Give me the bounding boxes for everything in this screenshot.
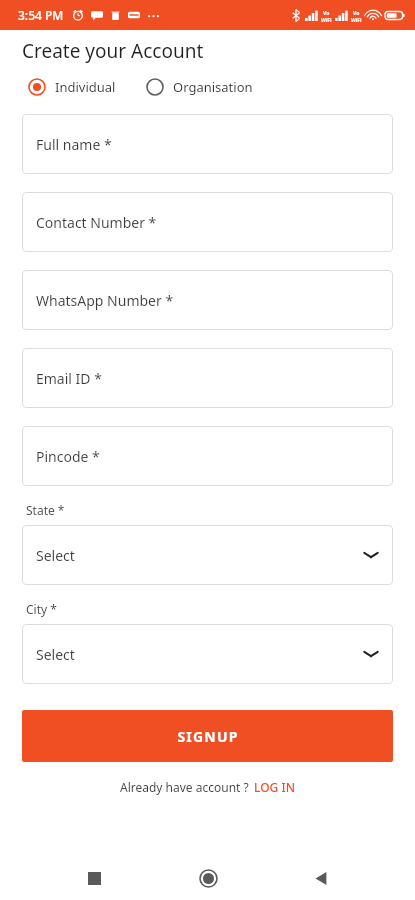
staticText: Full name * xyxy=(36,135,112,154)
staticText: City * xyxy=(26,601,57,617)
button[interactable]: Organisation xyxy=(146,78,253,96)
staticText: Create your Account xyxy=(22,38,204,64)
button[interactable]: Email ID * xyxy=(22,348,393,408)
button[interactable]: Pincode * xyxy=(22,426,393,486)
staticText: 3:54 PM xyxy=(18,7,64,23)
button[interactable]: WhatsApp Number * xyxy=(22,270,393,330)
button[interactable]: Individual xyxy=(28,78,116,96)
button[interactable]: Back xyxy=(301,858,341,898)
staticText: Organisation xyxy=(173,78,253,96)
staticText: WiFi xyxy=(351,17,362,22)
staticText: Vo xyxy=(353,10,360,17)
staticText: LOG IN xyxy=(254,779,295,795)
button[interactable]: Recents xyxy=(74,858,114,898)
staticText: WiFi xyxy=(321,17,332,22)
button[interactable]: Home xyxy=(188,858,228,898)
button[interactable]: Select state xyxy=(22,525,393,585)
button[interactable]: Contact Number * xyxy=(22,192,393,252)
button[interactable]: LOG IN xyxy=(254,779,295,795)
button[interactable]: SIGNUP xyxy=(22,710,393,762)
staticText: Email ID * xyxy=(36,369,102,388)
staticText: State * xyxy=(26,502,65,518)
staticText: Pincode * xyxy=(36,447,100,466)
button[interactable]: Full name * xyxy=(22,114,393,174)
staticText: SIGNUP xyxy=(177,727,239,746)
staticText: Individual xyxy=(55,78,116,96)
staticText: Select xyxy=(36,546,75,565)
staticText: WhatsApp Number * xyxy=(36,291,174,310)
staticText: Vo xyxy=(323,10,330,17)
staticText: Already have account ? xyxy=(120,779,249,795)
button[interactable]: Select city xyxy=(22,624,393,684)
staticText: Select xyxy=(36,645,75,664)
staticText: Contact Number * xyxy=(36,213,157,232)
